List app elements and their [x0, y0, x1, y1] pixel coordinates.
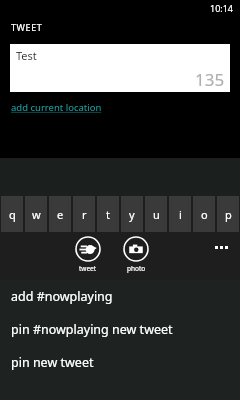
button[interactable]: t	[97, 196, 119, 233]
staticText: TWEET	[11, 21, 43, 33]
button[interactable]: e	[49, 196, 71, 233]
button[interactable]: w	[25, 196, 47, 233]
staticText: tweet	[79, 264, 97, 273]
staticText: 10:14	[210, 2, 234, 14]
staticText: pin #nowplaying new tweet	[11, 321, 173, 338]
staticText: e	[57, 207, 64, 222]
staticText: 135	[195, 68, 225, 91]
button[interactable]: i	[169, 196, 191, 233]
button[interactable]: p	[217, 196, 239, 233]
staticText: Test	[16, 48, 37, 63]
staticText: i	[179, 207, 182, 222]
staticText: w	[32, 207, 41, 222]
staticText: u	[153, 207, 160, 222]
staticText: pin new tweet	[11, 354, 94, 371]
staticText: add #nowplaying	[11, 288, 113, 305]
button[interactable]: r	[73, 196, 95, 233]
button[interactable]: pin #nowplaying new tweet	[0, 313, 240, 346]
staticText: o	[201, 207, 208, 222]
staticText: y	[129, 207, 135, 222]
button[interactable]: q	[1, 196, 23, 233]
button[interactable]: y	[121, 196, 143, 233]
button[interactable]: pin new tweet	[0, 346, 240, 379]
button[interactable]: add current location	[11, 101, 102, 114]
staticText: r	[82, 207, 87, 222]
staticText: add current location	[11, 101, 102, 114]
button[interactable]: o	[193, 196, 215, 233]
button[interactable]: u	[145, 196, 167, 233]
staticText: q	[9, 207, 16, 222]
button[interactable]: Test	[10, 44, 230, 92]
button[interactable]: More options	[210, 240, 232, 254]
button[interactable]: Send tweet	[71, 236, 105, 273]
staticText: p	[225, 207, 232, 222]
button[interactable]: add #nowplaying	[0, 280, 240, 313]
staticText: photo	[127, 264, 146, 273]
staticText: t	[106, 207, 110, 222]
button[interactable]: Attach photo	[119, 236, 153, 273]
